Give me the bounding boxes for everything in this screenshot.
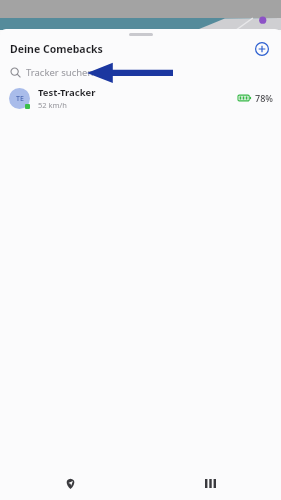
staticText: 78% xyxy=(255,92,273,104)
button[interactable]: Tracker hinzufügen xyxy=(253,40,271,58)
staticText: Test-Tracker xyxy=(38,86,96,99)
button[interactable]: Liste xyxy=(140,466,281,500)
button[interactable]: Karte xyxy=(0,466,140,500)
staticText: TE xyxy=(16,94,24,104)
staticText: Deine Comebacks xyxy=(10,42,103,56)
button[interactable]: Tracker suchen xyxy=(0,61,281,83)
staticText: Tracker suchen xyxy=(26,66,94,79)
staticText: 52 km/h xyxy=(38,100,67,110)
button[interactable]: TE xyxy=(0,83,281,113)
